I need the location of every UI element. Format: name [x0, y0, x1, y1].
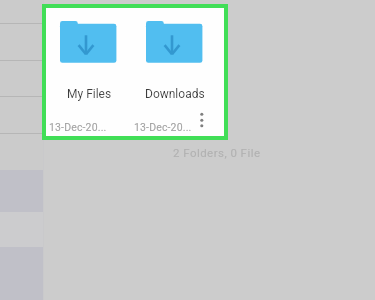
staticText: 13-Dec-20...	[49, 121, 107, 133]
staticText: 13-Dec-20...	[134, 121, 192, 133]
button[interactable]: My Files	[46, 8, 224, 136]
button[interactable]	[0, 0, 43, 170]
staticText: Downloads	[145, 87, 205, 101]
staticText: 2 Folders, 0 File	[173, 146, 261, 159]
staticText: My Files	[67, 87, 112, 101]
button[interactable]: More options	[192, 109, 212, 135]
